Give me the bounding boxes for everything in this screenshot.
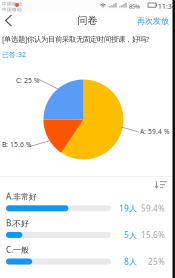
staticText: A.非常好 [6,191,37,202]
staticText: 中国移动 [2,1,22,7]
staticText: A: 59.4 % [140,127,170,136]
staticText: C.一般 [6,244,29,255]
staticText: 8人 [124,256,137,267]
staticText: 85% [129,2,140,10]
staticText: 中国移动 [2,7,22,13]
staticText: 59.4% [141,203,165,214]
staticText: 15.6% [141,230,165,240]
staticText: C: 25 % [16,76,40,85]
button[interactable]: Back [0,0,175,278]
staticText: 再次发放 [137,16,169,26]
staticText: 问卷 [77,14,97,27]
staticText: 25% [148,256,165,267]
staticText: [单选题]你认为目前采取无固定时间授课，好吗? [2,34,149,44]
staticText: B.不好 [6,218,29,229]
staticText: 5人 [124,230,137,240]
staticText: 已答:32 [2,50,26,59]
staticText: B: 15.6 % [2,140,32,149]
button[interactable]: 再次发放 [0,0,175,278]
button[interactable]: Sort [0,0,175,278]
staticText: 11:34 [158,2,175,11]
staticText: 19人 [119,203,137,214]
